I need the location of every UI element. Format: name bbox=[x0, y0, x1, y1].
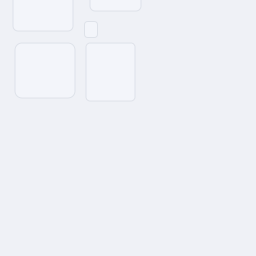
button[interactable]: Tile 2 bbox=[90, 0, 141, 11]
button[interactable]: Tile 3 bbox=[15, 43, 75, 98]
button[interactable]: Tile 5 bbox=[84, 21, 97, 37]
